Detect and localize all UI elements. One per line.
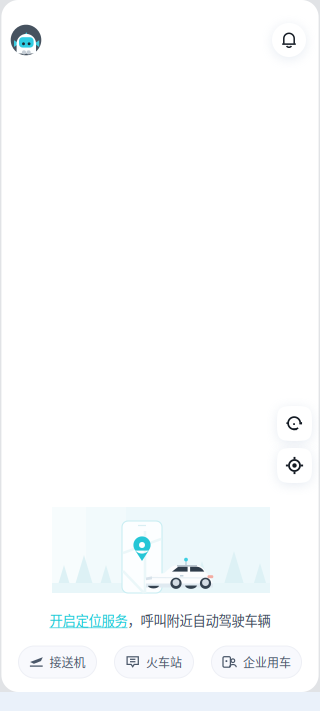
- button[interactable]: Notifications: [272, 23, 306, 57]
- staticText: ，呼叫附近自动驾驶车辆: [127, 610, 270, 630]
- staticText: 企业用车: [243, 653, 291, 671]
- button[interactable]: 火车站: [114, 646, 193, 678]
- button[interactable]: 企业用车: [211, 646, 301, 678]
- button[interactable]: Profile: [5, 19, 47, 61]
- staticText: 火车站: [146, 653, 182, 671]
- staticText: 开启定位服务: [49, 610, 127, 630]
- staticText: 接送机: [49, 653, 85, 671]
- button[interactable]: Customer service: [277, 406, 312, 441]
- button[interactable]: Center on my location: [277, 448, 312, 483]
- button[interactable]: 开启定位服务: [0, 610, 320, 630]
- button[interactable]: 接送机: [18, 646, 96, 678]
